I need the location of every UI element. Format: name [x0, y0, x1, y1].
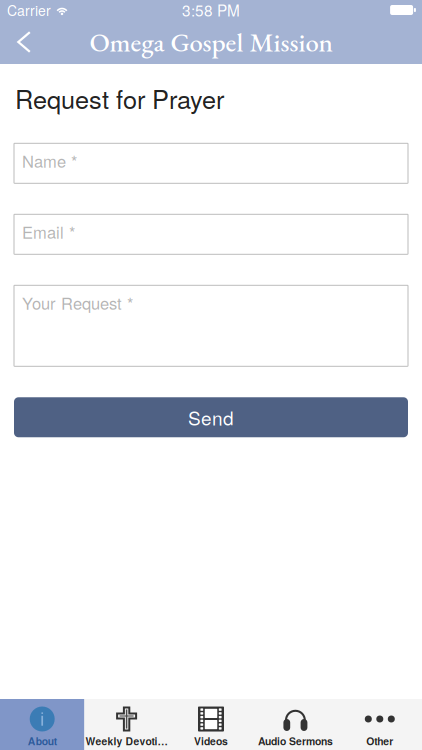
- staticText: About: [28, 734, 57, 748]
- staticText: Audio Sermons: [258, 734, 333, 748]
- button[interactable]: Audio Sermons: [253, 699, 338, 750]
- staticText: Your Request *: [22, 291, 133, 314]
- button[interactable]: About: [0, 699, 84, 750]
- staticText: Omega Gospel Mission: [89, 25, 332, 59]
- staticText: Email *: [22, 220, 75, 243]
- button[interactable]: Weekly Devoti…: [84, 699, 169, 750]
- staticText: Name *: [22, 149, 77, 172]
- staticText: Carrier: [7, 0, 51, 20]
- staticText: Send: [188, 404, 234, 431]
- staticText: Weekly Devoti…: [86, 734, 168, 748]
- staticText: 3:58 PM: [182, 0, 240, 21]
- staticText: Videos: [194, 734, 228, 748]
- button[interactable]: Send: [14, 397, 408, 437]
- button[interactable]: Other: [338, 699, 422, 750]
- button[interactable]: Videos: [169, 699, 253, 750]
- button[interactable]: Back: [0, 20, 48, 64]
- staticText: Other: [366, 734, 393, 748]
- staticText: Request for Prayer: [15, 80, 224, 116]
